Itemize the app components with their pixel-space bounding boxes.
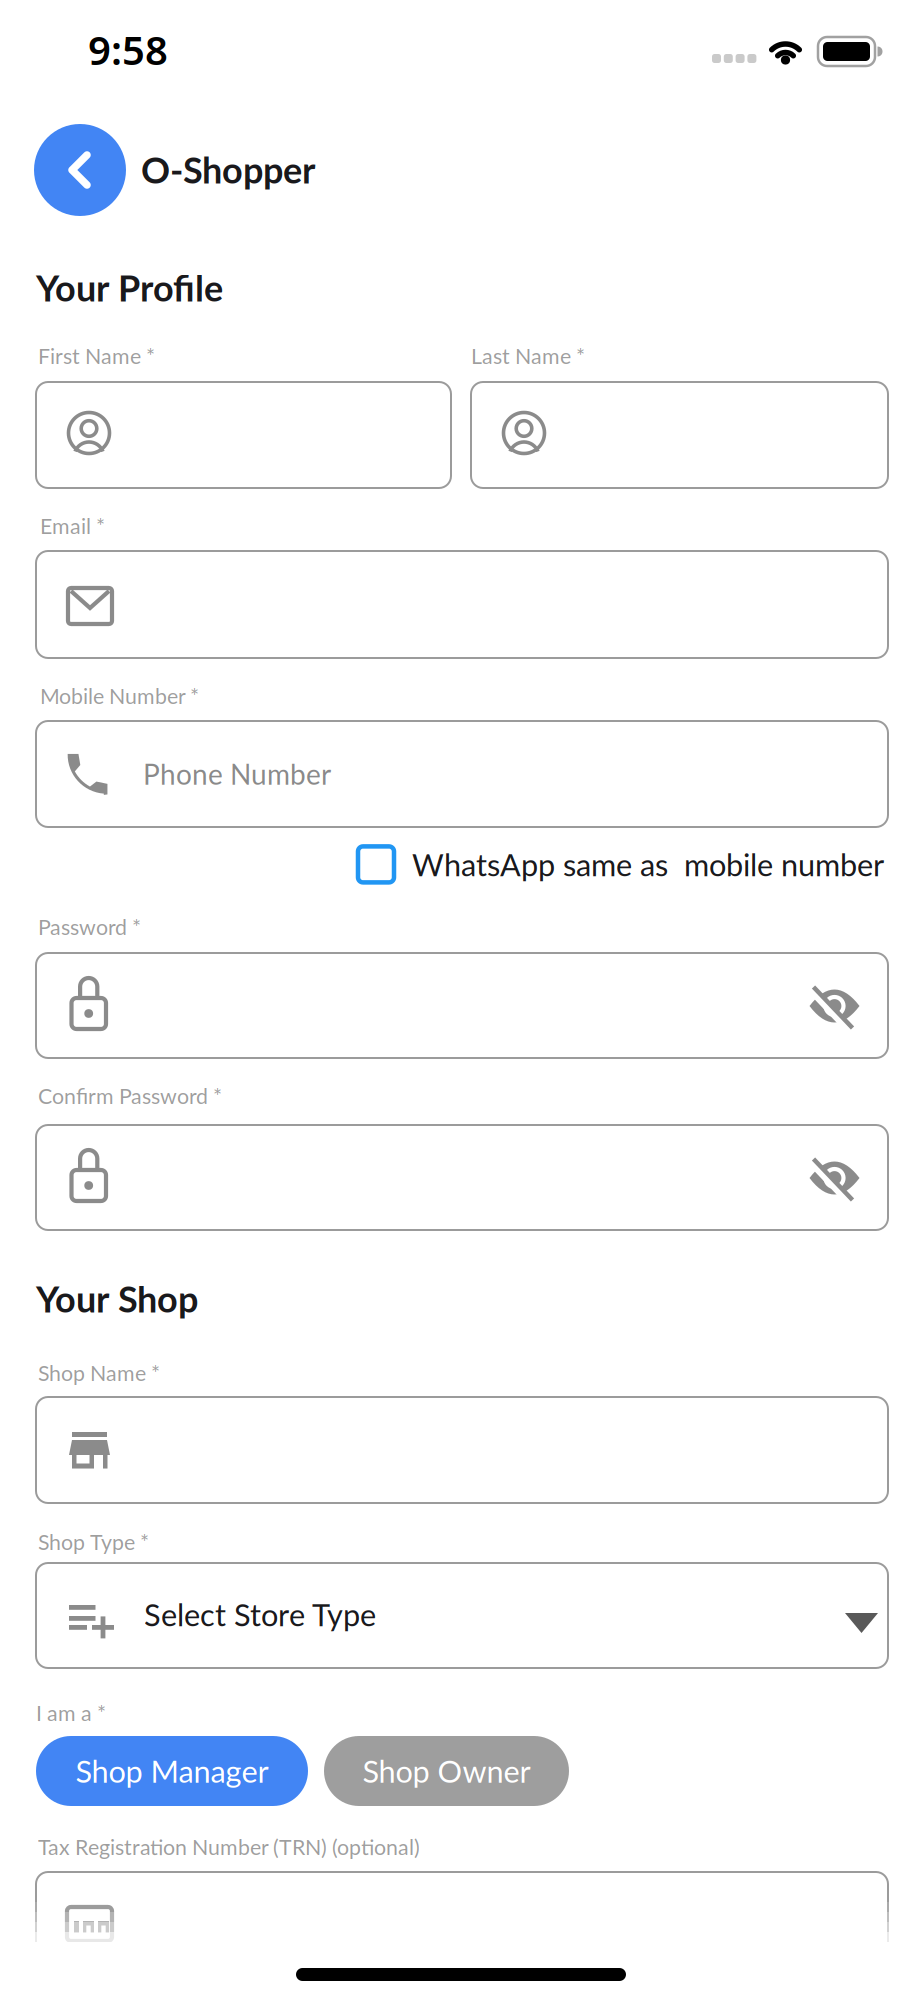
button[interactable] <box>804 976 864 1036</box>
staticText: Email * <box>40 513 105 539</box>
staticText: WhatsApp same as mobile number <box>412 846 884 883</box>
staticText: Tax Registration Number (TRN) (optional) <box>38 1834 420 1860</box>
staticText: Shop Manager <box>75 1753 268 1789</box>
button[interactable] <box>36 382 451 488</box>
button[interactable] <box>804 1148 864 1208</box>
staticText: Phone Number <box>143 757 331 791</box>
button[interactable] <box>34 124 126 216</box>
button[interactable] <box>36 1125 888 1230</box>
staticText: Password * <box>38 914 141 940</box>
staticText: 9:58 <box>88 23 168 76</box>
staticText: Shop Owner <box>362 1753 530 1789</box>
staticText: Select Store Type <box>144 1596 376 1633</box>
staticText: Shop Type * <box>38 1529 149 1555</box>
button[interactable] <box>36 953 888 1058</box>
button[interactable] <box>36 1872 888 1978</box>
button[interactable]: Select Store Type <box>36 1563 888 1668</box>
staticText: I am a * <box>36 1700 106 1726</box>
staticText: Shop Name * <box>38 1360 160 1386</box>
staticText: Confirm Password * <box>38 1083 222 1109</box>
button[interactable]: Shop Owner <box>324 1736 569 1806</box>
button[interactable] <box>471 382 888 488</box>
staticText: First Name * <box>38 343 155 369</box>
staticText: Your Profile <box>36 266 223 309</box>
button[interactable] <box>36 1397 888 1503</box>
staticText: O-Shopper <box>141 148 315 191</box>
button[interactable] <box>36 551 888 658</box>
staticText: Last Name * <box>471 343 585 369</box>
button[interactable]: Shop Manager <box>36 1736 308 1806</box>
staticText: Mobile Number * <box>40 683 199 709</box>
button[interactable]: WhatsApp same as mobile number <box>358 846 884 883</box>
staticText: Your Shop <box>36 1277 198 1320</box>
button[interactable] <box>36 721 888 827</box>
